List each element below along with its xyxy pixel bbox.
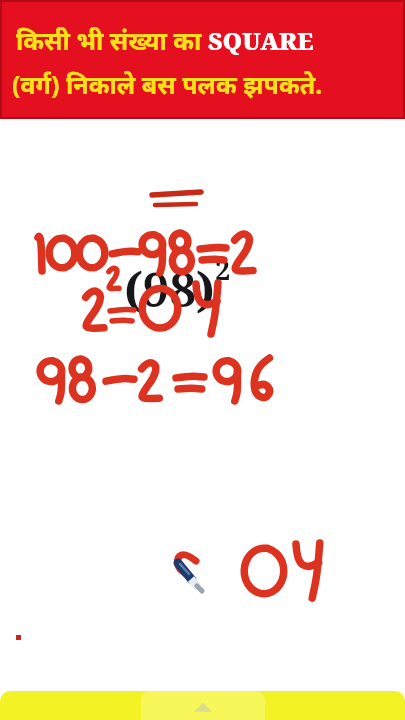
staticText: (98)	[124, 257, 215, 321]
staticText: 2	[215, 251, 231, 288]
staticText: किसी भी संख्या का	[16, 23, 208, 57]
button[interactable]: किसी भी संख्या का	[2, 2, 403, 117]
button[interactable]: (98)	[124, 257, 231, 321]
staticText: SQUARE	[208, 24, 314, 57]
button[interactable]: Expand	[141, 691, 265, 720]
staticText: (वर्ग) निकाले बस पलक झपकते.	[12, 67, 323, 101]
